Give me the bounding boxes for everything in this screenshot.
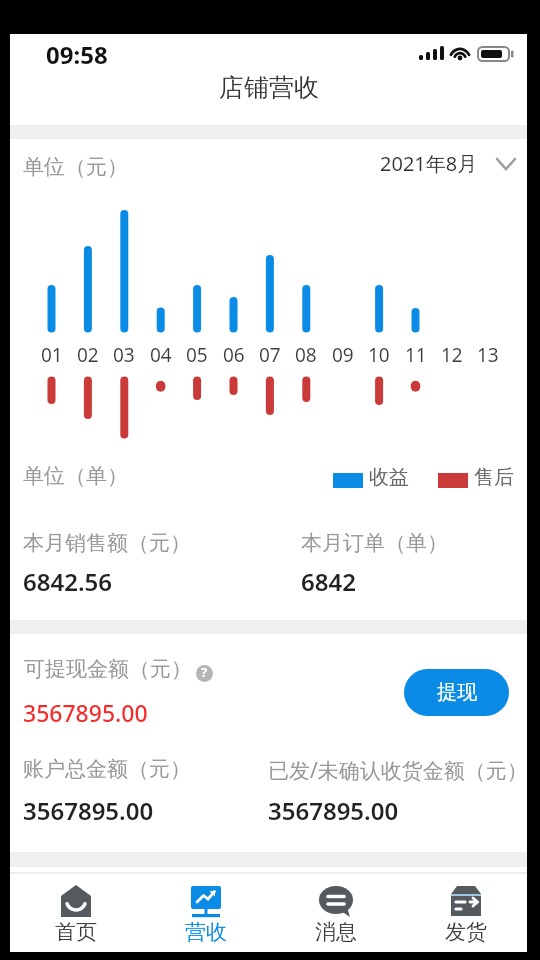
staticText: ? — [201, 663, 208, 681]
staticText: 店铺营收 — [219, 72, 319, 103]
staticText: 本月销售额（元） — [23, 530, 191, 556]
staticText: 2021年8月 — [380, 150, 478, 177]
staticText: 营收 — [185, 919, 227, 945]
staticText: 已发/未确认收货金额（元） — [268, 756, 528, 785]
staticText: 05 — [186, 342, 208, 368]
staticText: 3567895.00 — [23, 794, 154, 827]
staticText: 04 — [150, 342, 172, 368]
staticText: 6842.56 — [23, 565, 112, 598]
staticText: 发货 — [445, 919, 487, 945]
staticText: 账户总金额（元） — [23, 756, 191, 782]
staticText: 09:58 — [46, 38, 108, 71]
staticText: 13 — [477, 342, 499, 368]
button[interactable]: 首页 — [11, 860, 141, 952]
staticText: 本月订单（单） — [301, 530, 448, 556]
staticText: 消息 — [315, 919, 357, 945]
staticText: 首页 — [55, 919, 97, 945]
staticText: 3567895.00 — [268, 794, 399, 827]
staticText: 07 — [259, 342, 281, 368]
staticText: 单位（单） — [23, 463, 128, 489]
staticText: 收益 — [369, 465, 409, 490]
button[interactable]: 提现 — [404, 669, 509, 716]
staticText: 08 — [295, 342, 317, 368]
staticText: 11 — [405, 342, 427, 368]
staticText: 09 — [332, 342, 354, 368]
staticText: 12 — [441, 342, 463, 368]
staticText: 单位（元） — [23, 154, 128, 180]
staticText: 3567895.00 — [23, 697, 148, 728]
staticText: 提现 — [437, 680, 477, 705]
staticText: 10 — [368, 342, 390, 368]
button[interactable]: 消息 — [271, 860, 401, 952]
staticText: 03 — [113, 342, 135, 368]
button[interactable]: 营收 — [141, 860, 271, 952]
staticText: 02 — [77, 342, 99, 368]
button[interactable]: 2021年8月 — [380, 150, 516, 177]
staticText: 01 — [41, 342, 63, 368]
staticText: 6842 — [301, 565, 356, 598]
staticText: 售后 — [474, 465, 514, 490]
staticText: 06 — [223, 342, 245, 368]
button[interactable]: 发货 — [401, 860, 531, 952]
staticText: 可提现金额（元） — [24, 656, 192, 682]
